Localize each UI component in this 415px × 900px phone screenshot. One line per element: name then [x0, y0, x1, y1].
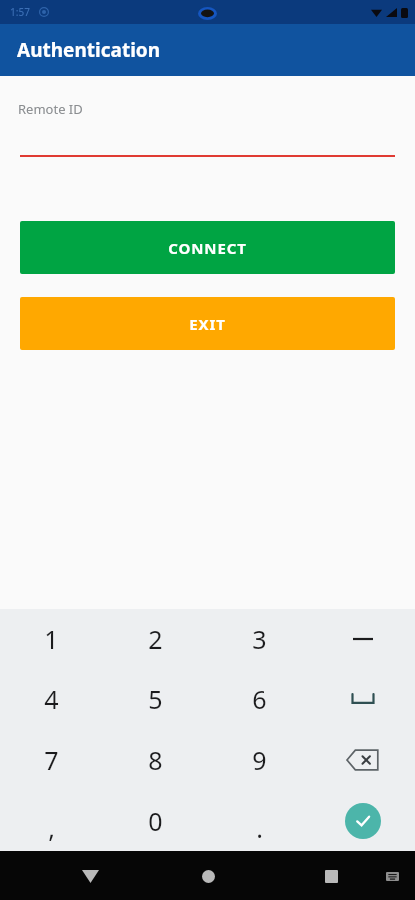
button[interactable]: 0	[103, 790, 207, 851]
staticText: 6	[252, 682, 267, 716]
staticText: Remote ID	[18, 100, 83, 118]
staticText: Authentication	[17, 37, 161, 63]
button[interactable]: 3	[207, 609, 311, 669]
button[interactable]: EXIT	[20, 297, 395, 350]
button[interactable]: Switch keyboard	[375, 859, 409, 893]
staticText: .	[256, 811, 263, 845]
button[interactable]: Enter	[311, 790, 415, 851]
staticText: 8	[148, 743, 163, 777]
staticText: 7	[44, 743, 59, 777]
button[interactable]: Minus	[311, 609, 415, 669]
button[interactable]: ,	[0, 790, 103, 851]
staticText: 4	[44, 682, 59, 716]
button[interactable]: 8	[103, 729, 207, 790]
button[interactable]: Home	[184, 852, 232, 900]
staticText: 1:57	[10, 5, 30, 19]
button[interactable]: Back	[66, 852, 114, 900]
button[interactable]: 7	[0, 729, 103, 790]
button[interactable]: 2	[103, 609, 207, 669]
button[interactable]: CONNECT	[20, 221, 395, 274]
button[interactable]: 5	[103, 669, 207, 729]
staticText: 1	[44, 622, 59, 656]
staticText: 9	[252, 743, 267, 777]
staticText: ,	[48, 811, 55, 845]
button[interactable]: .	[207, 790, 311, 851]
staticText: 0	[148, 804, 163, 838]
button[interactable]: Backspace	[311, 729, 415, 790]
button[interactable]: 9	[207, 729, 311, 790]
staticText: 5	[148, 682, 163, 716]
staticText: 2	[148, 622, 163, 656]
button[interactable]: 4	[0, 669, 103, 729]
button[interactable]: Recent apps	[307, 852, 355, 900]
staticText: 3	[252, 622, 267, 656]
button[interactable]: Space	[311, 669, 415, 729]
staticText: EXIT	[189, 314, 226, 334]
staticText: CONNECT	[168, 238, 247, 258]
button[interactable]: 6	[207, 669, 311, 729]
button[interactable]: 1	[0, 609, 103, 669]
